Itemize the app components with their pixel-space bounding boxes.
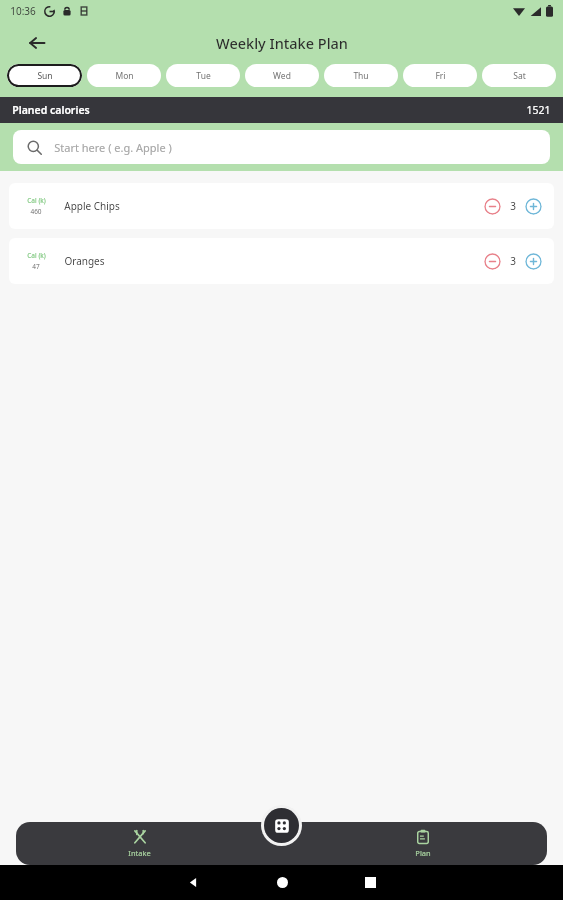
- staticText: Tue: [196, 70, 211, 82]
- staticText: Wed: [273, 70, 291, 82]
- staticText: 3: [510, 254, 516, 268]
- staticText: 460: [30, 207, 42, 216]
- button[interactable]: Wed: [245, 64, 319, 87]
- staticText: Cal (k): [27, 251, 46, 260]
- button[interactable]: Intake: [16, 822, 263, 865]
- staticText: 10:36: [10, 4, 36, 18]
- button[interactable]: Cal (k): [9, 238, 554, 284]
- staticText: Oranges: [64, 254, 105, 268]
- button[interactable]: Cal (k): [9, 183, 554, 229]
- staticText: Thu: [353, 70, 369, 82]
- button[interactable]: Increase Oranges: [525, 253, 542, 270]
- staticText: 1521: [526, 103, 551, 117]
- staticText: Weekly Intake Plan: [216, 33, 348, 53]
- button[interactable]: Increase Apple Chips: [525, 198, 542, 215]
- staticText: Cal (k): [27, 196, 46, 205]
- staticText: Fri: [435, 70, 446, 82]
- staticText: Start here ( e.g. Apple ): [54, 140, 172, 155]
- button[interactable]: Sun: [7, 64, 82, 87]
- staticText: Planed calories: [12, 103, 90, 117]
- button[interactable]: Decrease Apple Chips: [484, 198, 501, 215]
- button[interactable]: Start here ( e.g. Apple ): [13, 130, 550, 164]
- button[interactable]: Mon: [87, 64, 161, 87]
- button[interactable]: Fri: [403, 64, 477, 87]
- staticText: Intake: [128, 848, 151, 858]
- staticText: 47: [32, 262, 40, 271]
- button[interactable]: Add food: [264, 808, 299, 843]
- button[interactable]: Decrease Oranges: [484, 253, 501, 270]
- staticText: Sun: [37, 70, 53, 82]
- staticText: Sat: [513, 70, 526, 82]
- staticText: Mon: [115, 70, 134, 82]
- staticText: 3: [510, 199, 516, 213]
- button[interactable]: Tue: [166, 64, 240, 87]
- staticText: Plan: [415, 848, 431, 858]
- button[interactable]: Sat: [482, 64, 556, 87]
- staticText: Apple Chips: [64, 199, 120, 213]
- button[interactable]: Back: [20, 26, 54, 60]
- button[interactable]: Thu: [324, 64, 398, 87]
- button[interactable]: Plan: [299, 822, 547, 865]
